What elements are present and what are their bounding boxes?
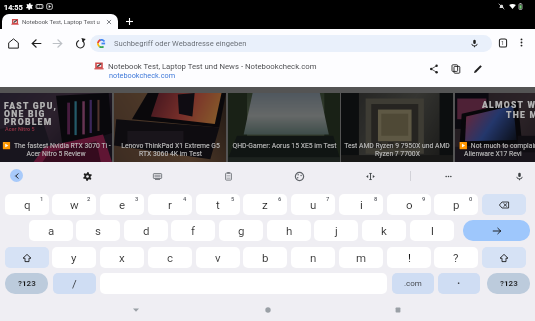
button[interactable]: New tab <box>124 16 135 27</box>
button[interactable]: c <box>148 247 192 268</box>
staticText: 5 <box>231 196 235 203</box>
staticText: 4 <box>183 196 187 203</box>
button[interactable]: q <box>5 194 49 215</box>
button[interactable]: p <box>434 194 478 215</box>
button[interactable]: e <box>100 194 144 215</box>
button[interactable]: n <box>291 247 335 268</box>
staticText: k <box>381 224 387 237</box>
staticText: RTX 3060 4K im Test <box>139 150 202 158</box>
staticText: f <box>191 224 195 237</box>
staticText: t <box>216 198 220 211</box>
button[interactable]: y <box>52 247 96 268</box>
button[interactable]: Edit <box>472 63 484 75</box>
button[interactable]: ?123 <box>5 273 48 294</box>
staticText: n <box>310 251 317 264</box>
staticText: ?123 <box>500 279 518 288</box>
staticText: o <box>406 198 413 211</box>
staticText: Notebook Test, Laptop Test und News - No… <box>108 62 317 71</box>
button[interactable]: QHD-Gamer: Aorus 15 XE5 im Test <box>228 93 340 162</box>
button[interactable]: backspace <box>482 194 526 215</box>
button[interactable]: m <box>339 247 383 268</box>
button[interactable]: Copy <box>450 63 462 75</box>
staticText: / <box>72 277 77 290</box>
button[interactable]: Reload <box>73 36 87 50</box>
button[interactable]: Themes <box>150 169 164 183</box>
button[interactable]: Back <box>29 36 43 50</box>
button[interactable]: Notebook Test, Laptop Test u <box>2 14 118 29</box>
button[interactable]: Tabs <box>497 37 509 49</box>
button[interactable]: Settings <box>80 169 94 183</box>
staticText: ONE BIG <box>4 109 46 119</box>
button[interactable]: l <box>410 220 454 241</box>
button[interactable]: / <box>53 273 96 294</box>
button[interactable]: FAST GPU, <box>0 93 112 162</box>
button[interactable]: Voice input <box>512 169 526 183</box>
staticText: w <box>70 198 79 211</box>
button[interactable]: Share <box>428 63 440 75</box>
staticText: Acer Nitro 5 <box>5 126 35 132</box>
button[interactable]: Forward <box>50 36 64 50</box>
staticText: a <box>48 224 55 237</box>
button[interactable]: Notebook Test, Laptop Test und News - No… <box>0 53 535 87</box>
button[interactable]: Suchbegriff oder Webadresse eingeben <box>90 35 492 52</box>
button[interactable]: b <box>243 247 287 268</box>
button[interactable]: ALMOST W <box>455 93 535 162</box>
staticText: ALMOST W <box>482 100 535 110</box>
button[interactable]: Home <box>6 36 20 50</box>
button[interactable]: Expand toolbar <box>10 169 23 182</box>
button[interactable]: w <box>52 194 96 215</box>
staticText: 8 <box>374 196 378 203</box>
staticText: QHD-Gamer: Aorus 15 XE5 im Test <box>232 142 337 150</box>
button[interactable]: Home <box>262 304 274 316</box>
button[interactable]: Back <box>130 304 142 316</box>
button[interactable]: g <box>219 220 263 241</box>
button[interactable]: t <box>196 194 240 215</box>
staticText: y <box>71 251 77 264</box>
button[interactable]: ? <box>434 247 478 268</box>
button[interactable]: z <box>243 194 287 215</box>
button[interactable]: x <box>100 247 144 268</box>
button[interactable]: Lenovo ThinkPad X1 Extreme G5 <box>114 93 226 162</box>
staticText: PROBLEM <box>4 117 53 127</box>
staticText: q <box>24 198 31 211</box>
staticText: Ryzen 7 7700X <box>375 150 420 158</box>
staticText: FAST GPU, <box>4 101 58 111</box>
button[interactable]: h <box>267 220 311 241</box>
button[interactable]: u <box>291 194 335 215</box>
button[interactable]: j <box>314 220 358 241</box>
button[interactable]: .com <box>392 273 434 294</box>
staticText: i <box>360 198 363 211</box>
button[interactable]: enter <box>463 220 530 241</box>
button[interactable]: More <box>441 169 455 183</box>
button[interactable]: i <box>339 194 383 215</box>
staticText: p <box>453 198 460 211</box>
staticText: Notebook Test, Laptop Test u <box>22 18 100 25</box>
button[interactable]: shift <box>5 247 49 268</box>
staticText: ▶ The fastest Nvidia RTX 3070 Ti - <box>2 142 111 150</box>
button[interactable]: More options <box>516 37 527 48</box>
button[interactable]: Text editing <box>363 169 377 183</box>
staticText: ! <box>408 251 411 264</box>
button[interactable]: shift <box>482 247 526 268</box>
staticText: 0 <box>469 196 473 203</box>
staticText: b <box>262 251 269 264</box>
staticText: 1 <box>40 196 44 203</box>
button[interactable]: f <box>171 220 215 241</box>
button[interactable]: a <box>29 220 73 241</box>
button[interactable]: Clipboard <box>221 169 235 183</box>
button[interactable]: Test AMD Ryzen 9 7950X und AMD <box>341 93 453 162</box>
button[interactable]: k <box>362 220 406 241</box>
button[interactable]: d <box>124 220 168 241</box>
button[interactable]: ! <box>387 247 431 268</box>
button[interactable]: r <box>148 194 192 215</box>
button[interactable]: Palette <box>292 169 306 183</box>
button[interactable]: ?123 <box>487 273 530 294</box>
staticText: THE M <box>506 110 535 120</box>
staticText: .com <box>404 279 422 288</box>
button[interactable]: · <box>438 273 480 294</box>
button[interactable]: o <box>387 194 431 215</box>
button[interactable]: v <box>196 247 240 268</box>
button[interactable]: s <box>76 220 120 241</box>
button[interactable]: Recents <box>392 304 404 316</box>
